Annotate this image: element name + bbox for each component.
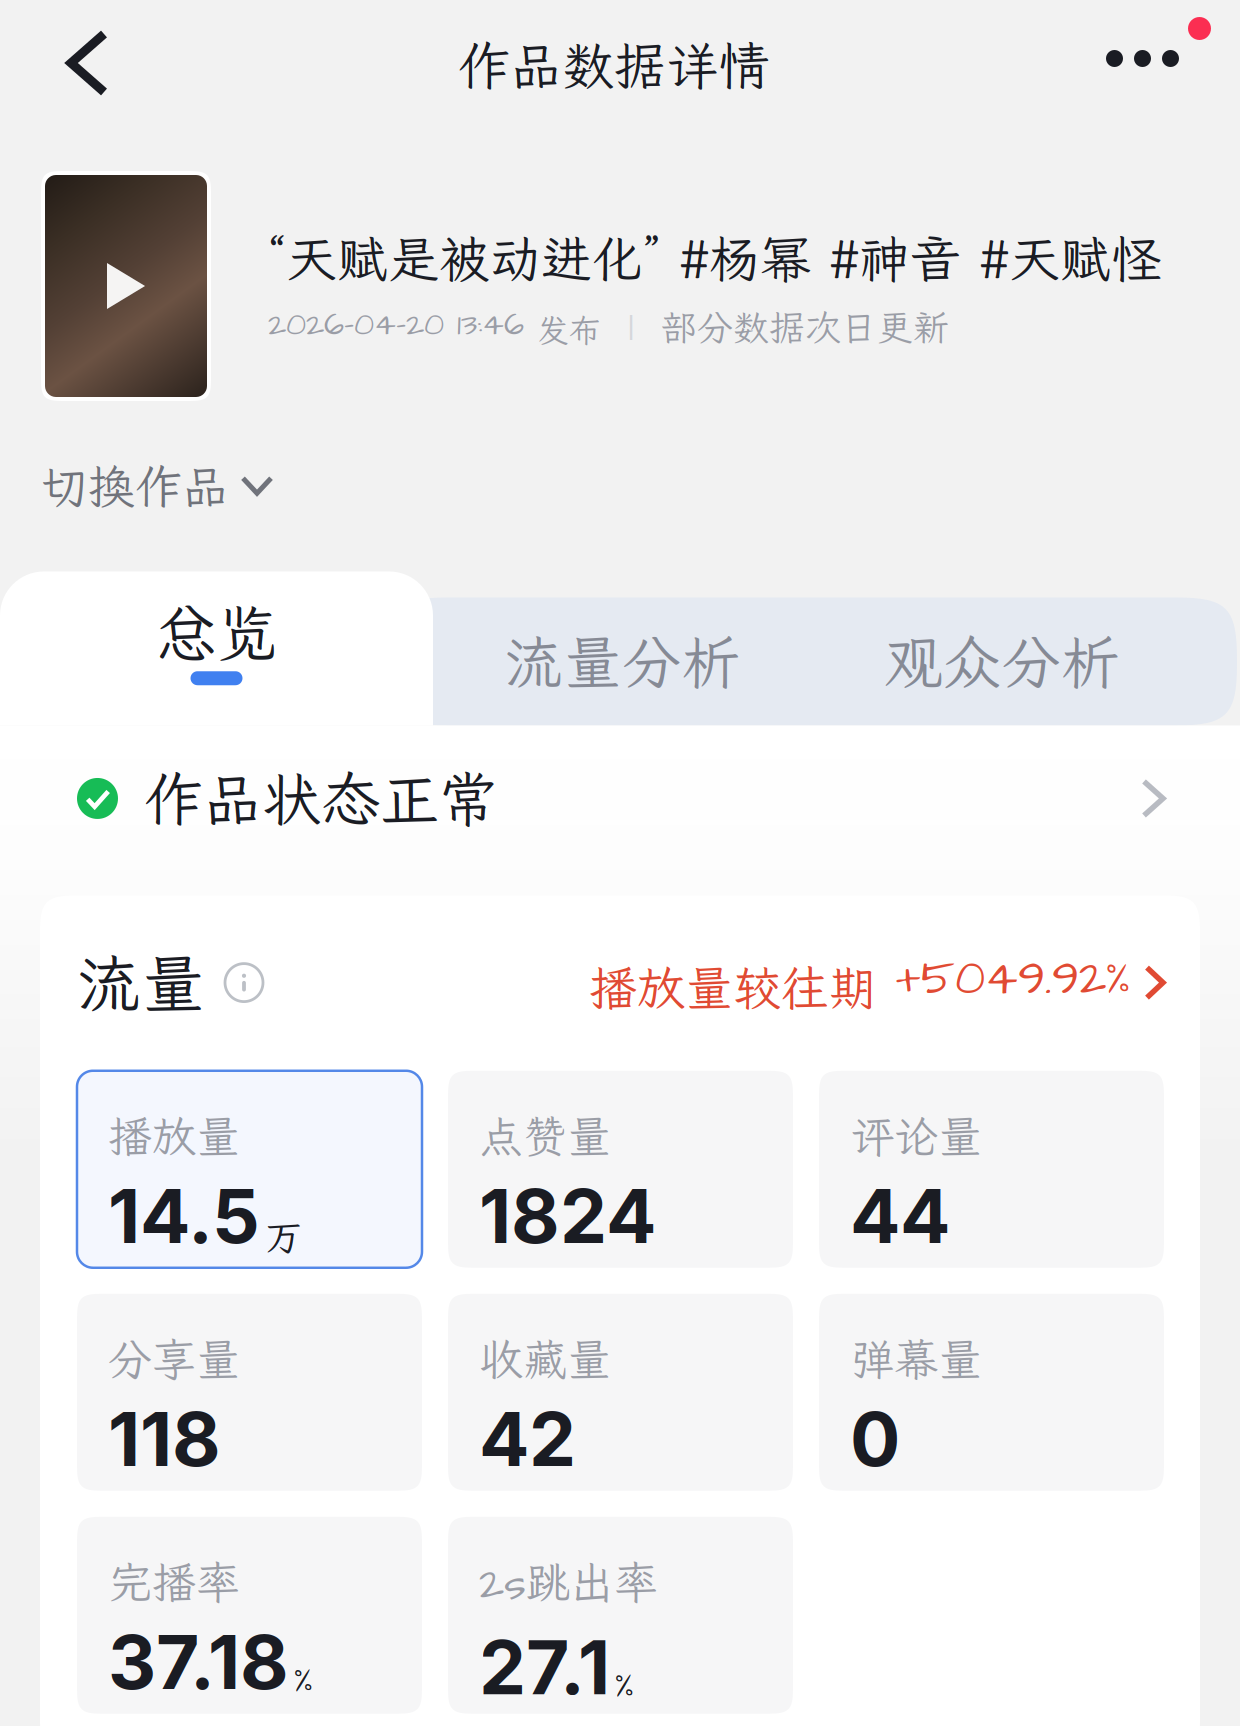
staticText: 流量 [77,940,205,1025]
staticText: 37.18 [108,1617,289,1707]
staticText: % [615,1660,634,1712]
staticText: “天赋是被动进化” #杨幂 #神音 #天赋怪 [268,225,1162,292]
staticText: 收藏量 [479,1330,611,1388]
staticText: 流量分析 [504,623,740,700]
staticText: 42 [479,1394,576,1484]
button[interactable]: 作品状态正常 [0,725,1240,895]
button[interactable]: 分享量 [77,1294,422,1491]
button[interactable]: 弹幕量 [819,1294,1164,1491]
staticText: 作品状态正常 [144,760,498,837]
staticText: 118 [108,1394,221,1484]
button[interactable]: 收藏量 [448,1294,793,1491]
staticText: 切换作品 [41,455,229,516]
staticText: 14.5 [108,1171,260,1261]
staticText: 播放量 [108,1107,240,1165]
staticText: 完播率 [108,1553,240,1611]
button[interactable]: 切换作品 [0,420,271,571]
button[interactable]: 播放量较往期 +5049.92% [589,946,1163,1019]
staticText: | [601,304,661,350]
button[interactable]: 点赞量 [448,1071,793,1268]
staticText: 万 [265,1212,302,1261]
button[interactable]: 观众分析 [858,603,1146,720]
staticText: 分享量 [108,1330,240,1388]
staticText: 总览 [155,592,277,673]
staticText: 弹幕量 [850,1330,982,1388]
staticText: 观众分析 [884,623,1120,700]
staticText: 部分数据次日更新 [661,303,949,351]
staticText: 播放量较往期 +5049.92% [589,946,1131,1019]
button[interactable]: 播放量 [77,1071,422,1268]
button[interactable]: 评论量 [819,1071,1164,1268]
button[interactable]: 流量分析 [478,603,766,720]
button[interactable]: 2s跳出率 [448,1517,793,1714]
staticText: 44 [850,1171,950,1261]
staticText: % [294,1655,313,1707]
staticText: 点赞量 [479,1107,611,1165]
staticText: 作品数据详情 [458,31,770,99]
button[interactable]: 总览 [0,571,433,725]
button[interactable]: Back [0,0,138,130]
button[interactable]: More options [1090,0,1240,130]
staticText: 27.1 [479,1622,610,1712]
button[interactable]: 完播率 [77,1517,422,1714]
staticText: 2026-04-20 13:46 发布 [268,303,601,351]
staticText: 0 [850,1394,900,1484]
staticText: 1824 [479,1171,656,1261]
staticText: 2s跳出率 [479,1553,658,1616]
staticText: 评论量 [850,1107,982,1165]
